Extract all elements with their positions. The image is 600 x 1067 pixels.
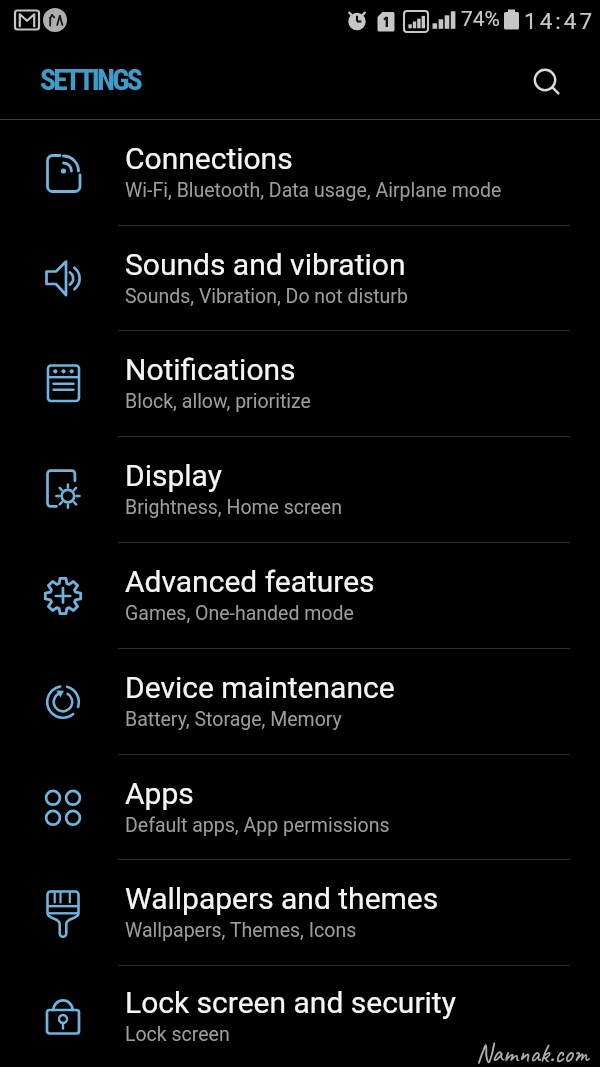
staticText: Games, One-handed mode — [125, 602, 354, 625]
staticText: 14:47 — [524, 8, 596, 34]
button[interactable]: Advanced features — [0, 543, 600, 649]
button[interactable]: Display — [0, 437, 600, 543]
button[interactable]: Device maintenance — [0, 649, 600, 755]
button[interactable]: Connections — [0, 120, 600, 226]
button[interactable]: Lock screen and security — [0, 966, 600, 1067]
button[interactable]: Sounds and vibration — [0, 226, 600, 331]
staticText: 74% — [461, 7, 500, 32]
staticText: Wi-Fi, Bluetooth, Data usage, Airplane m… — [125, 179, 502, 202]
staticText: Advanced features — [125, 564, 375, 599]
staticText: Apps — [125, 776, 194, 811]
staticText: Connections — [125, 141, 293, 176]
staticText: Lock screen and security — [125, 985, 456, 1020]
button[interactable]: Wallpapers and themes — [0, 860, 600, 966]
staticText: Device maintenance — [125, 670, 395, 705]
button[interactable]: Notifications — [0, 331, 600, 437]
staticText: Battery, Storage, Memory — [125, 708, 342, 731]
button[interactable]: Apps — [0, 755, 600, 860]
button[interactable] — [533, 68, 563, 98]
staticText: Brightness, Home screen — [125, 496, 342, 519]
staticText: Default apps, App permissions — [125, 814, 390, 837]
staticText: Wallpapers and themes — [125, 881, 439, 916]
staticText: Wallpapers, Themes, Icons — [125, 919, 357, 942]
staticText: SETTINGS — [40, 63, 140, 98]
staticText: Namnak.com — [476, 1037, 589, 1067]
staticText: Lock screen — [125, 1023, 230, 1046]
staticText: Block, allow, prioritize — [125, 390, 311, 413]
staticText: Sounds, Vibration, Do not disturb — [125, 285, 408, 308]
staticText: Notifications — [125, 352, 296, 387]
staticText: Display — [125, 458, 222, 493]
staticText: Sounds and vibration — [125, 247, 406, 282]
